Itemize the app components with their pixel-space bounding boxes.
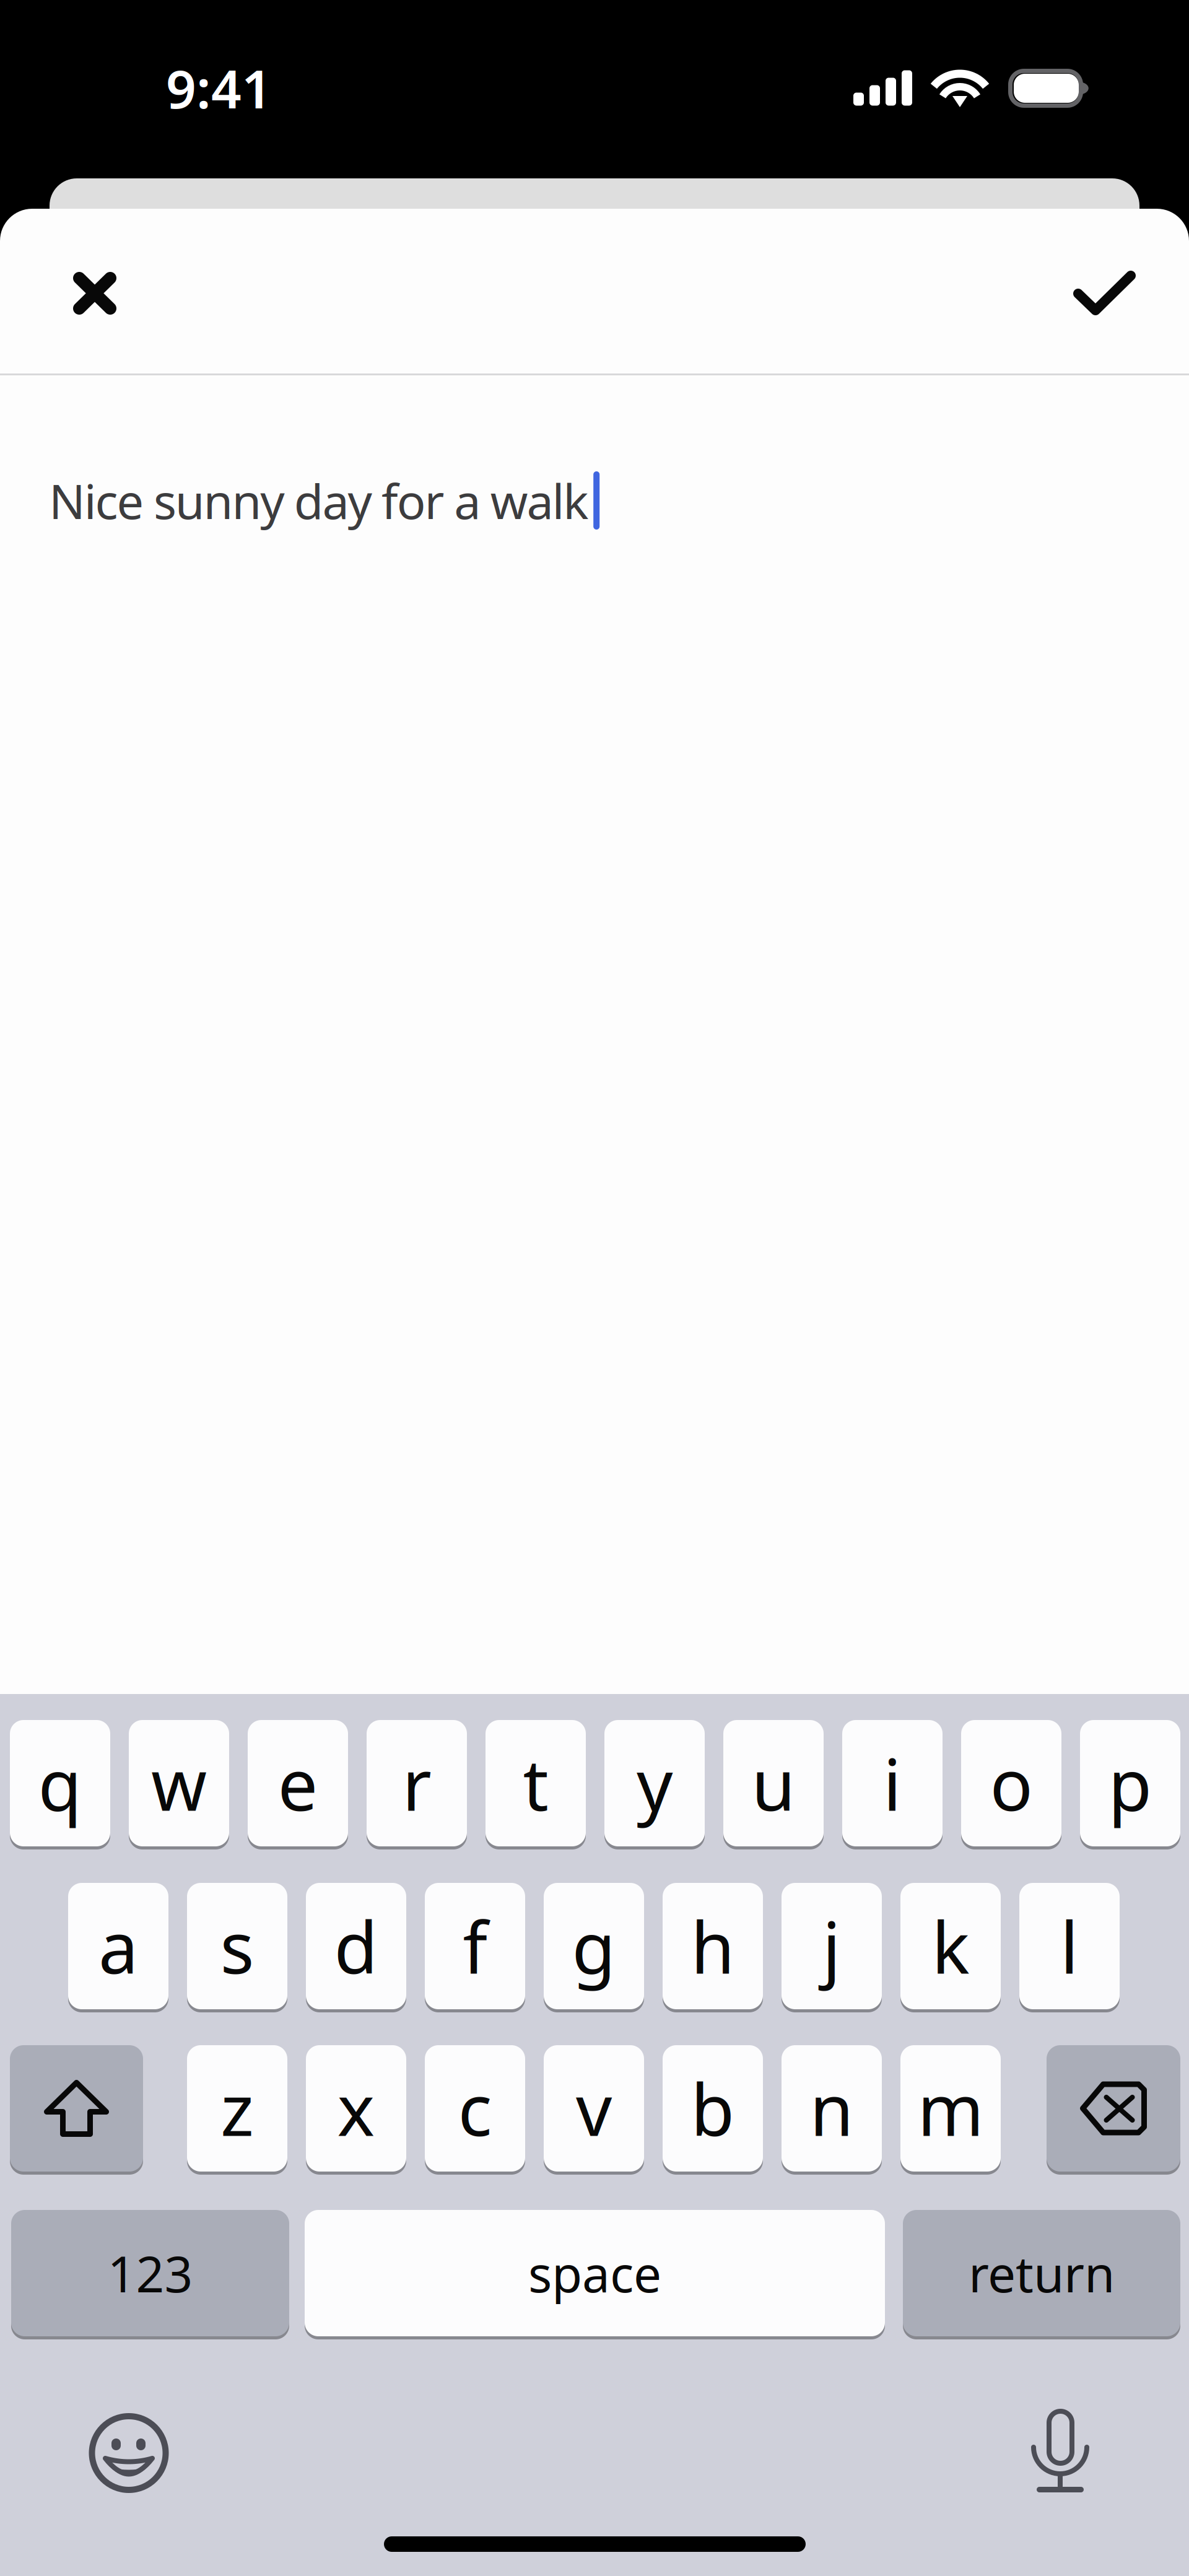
staticText: r bbox=[402, 1736, 431, 1830]
staticText: e bbox=[278, 1736, 318, 1830]
button[interactable]: r bbox=[367, 1720, 467, 1850]
button[interactable]: v bbox=[544, 2045, 644, 2175]
staticText: y bbox=[637, 1736, 673, 1830]
button[interactable]: Dictation bbox=[0, 0, 1189, 2576]
staticText: l bbox=[1060, 1899, 1079, 1993]
button[interactable]: k bbox=[900, 1883, 1001, 2013]
staticText: a bbox=[98, 1899, 138, 1993]
button[interactable]: i bbox=[842, 1720, 943, 1850]
button[interactable]: l bbox=[1019, 1883, 1120, 2013]
button[interactable]: f bbox=[425, 1883, 525, 2013]
button[interactable]: y bbox=[604, 1720, 705, 1850]
button[interactable]: Done bbox=[0, 0, 1189, 434]
button[interactable]: Shift bbox=[10, 2045, 143, 2175]
button[interactable]: x bbox=[306, 2045, 406, 2175]
staticText: return bbox=[969, 2240, 1115, 2306]
staticText: c bbox=[458, 2061, 492, 2156]
staticText: Nice sunny day for a walk bbox=[49, 469, 588, 532]
button[interactable]: s bbox=[187, 1883, 287, 2013]
button[interactable]: q bbox=[10, 1720, 110, 1850]
staticText: i bbox=[883, 1736, 902, 1830]
staticText: z bbox=[220, 2061, 254, 2156]
button[interactable]: g bbox=[544, 1883, 644, 2013]
staticText: s bbox=[220, 1899, 254, 1993]
button[interactable]: w bbox=[129, 1720, 229, 1850]
staticText: b bbox=[691, 2061, 735, 2156]
staticText: o bbox=[990, 1736, 1033, 1830]
staticText: v bbox=[576, 2061, 612, 2156]
button[interactable]: Emoji bbox=[0, 0, 1189, 2576]
button[interactable]: a bbox=[68, 1883, 168, 2013]
button[interactable]: n bbox=[782, 2045, 882, 2175]
staticText: t bbox=[523, 1736, 548, 1830]
button[interactable]: h bbox=[663, 1883, 763, 2013]
staticText: j bbox=[822, 1899, 841, 1993]
staticText: space bbox=[528, 2240, 661, 2306]
staticText: u bbox=[751, 1736, 795, 1830]
staticText: g bbox=[572, 1899, 616, 1993]
button[interactable]: Backspace bbox=[1047, 2045, 1180, 2175]
staticText: q bbox=[38, 1736, 82, 1830]
button[interactable]: c bbox=[425, 2045, 525, 2175]
staticText: k bbox=[932, 1899, 969, 1993]
staticText: w bbox=[151, 1736, 207, 1830]
staticText: h bbox=[691, 1899, 735, 1993]
staticText: 9:41 bbox=[166, 53, 272, 123]
button[interactable]: b bbox=[663, 2045, 763, 2175]
button[interactable]: t bbox=[486, 1720, 586, 1850]
staticText: p bbox=[1108, 1736, 1152, 1830]
button[interactable]: o bbox=[961, 1720, 1061, 1850]
staticText: f bbox=[463, 1899, 487, 1993]
button[interactable]: 123 bbox=[11, 2210, 289, 2340]
button[interactable]: space bbox=[305, 2210, 885, 2340]
staticText: 123 bbox=[107, 2240, 193, 2306]
staticText: m bbox=[917, 2061, 984, 2156]
staticText: n bbox=[810, 2061, 854, 2156]
staticText: d bbox=[334, 1899, 378, 1993]
button[interactable]: e bbox=[248, 1720, 348, 1850]
button[interactable]: j bbox=[782, 1883, 882, 2013]
button[interactable]: u bbox=[723, 1720, 824, 1850]
button[interactable]: return bbox=[903, 2210, 1180, 2340]
button[interactable]: Close bbox=[0, 0, 1189, 434]
button[interactable]: z bbox=[187, 2045, 287, 2175]
button[interactable]: d bbox=[306, 1883, 406, 2013]
staticText: x bbox=[337, 2061, 375, 2156]
button[interactable]: m bbox=[900, 2045, 1001, 2175]
button[interactable]: p bbox=[1080, 1720, 1180, 1850]
